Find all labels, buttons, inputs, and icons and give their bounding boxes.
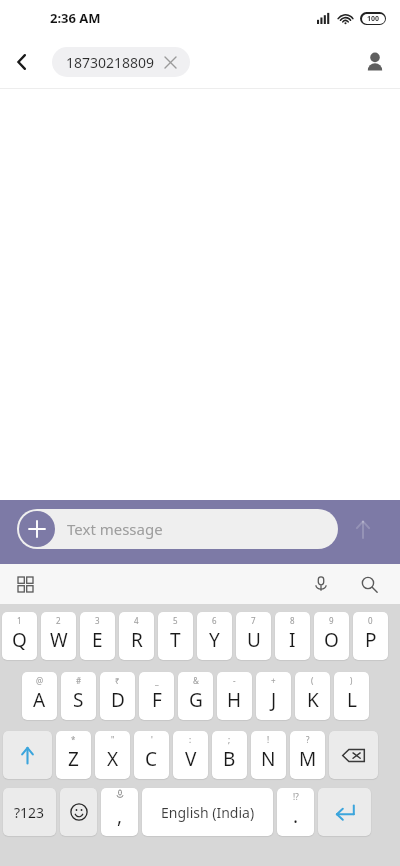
- staticText: English (India): [161, 803, 255, 822]
- staticText: C: [145, 746, 158, 772]
- button[interactable]: ?123: [3, 788, 56, 836]
- staticText: 4: [134, 615, 139, 626]
- button[interactable]: 3: [80, 612, 115, 660]
- button[interactable]: (: [295, 672, 330, 720]
- staticText: 9: [329, 615, 334, 626]
- button[interactable]: Back: [0, 40, 44, 84]
- staticText: G: [189, 687, 203, 713]
- button[interactable]: 6: [197, 612, 232, 660]
- staticText: V: [185, 746, 197, 772]
- button[interactable]: Send: [347, 513, 379, 545]
- button[interactable]: 7: [236, 612, 271, 660]
- button[interactable]: :: [173, 731, 208, 779]
- button[interactable]: Search: [352, 567, 386, 601]
- button[interactable]: 0: [353, 612, 388, 660]
- staticText: @: [36, 675, 44, 686]
- staticText: O: [324, 627, 339, 653]
- staticText: K: [307, 687, 319, 713]
- staticText: -: [233, 675, 236, 686]
- button[interactable]: 9: [314, 612, 349, 660]
- button[interactable]: ;: [212, 731, 247, 779]
- staticText: B: [223, 746, 236, 772]
- button[interactable]: Enter: [318, 788, 371, 836]
- staticText: Text message: [67, 519, 163, 539]
- staticText: L: [347, 687, 357, 713]
- button[interactable]: ): [334, 672, 369, 720]
- button[interactable]: ?: [290, 731, 325, 779]
- staticText: ': [151, 734, 153, 745]
- staticText: ;: [228, 734, 231, 745]
- staticText: A: [33, 687, 46, 713]
- staticText: *: [71, 734, 76, 745]
- staticText: ): [350, 675, 353, 686]
- staticText: J: [271, 687, 277, 713]
- button[interactable]: !?: [277, 788, 314, 836]
- staticText: W: [50, 627, 68, 653]
- staticText: U: [247, 627, 261, 653]
- button[interactable]: Emoji: [60, 788, 97, 836]
- button[interactable]: 1: [2, 612, 37, 660]
- button[interactable]: &: [178, 672, 213, 720]
- button[interactable]: @: [22, 672, 57, 720]
- button[interactable]: _: [139, 672, 174, 720]
- staticText: #: [76, 675, 82, 686]
- staticText: 5: [173, 615, 178, 626]
- button[interactable]: +: [256, 672, 291, 720]
- button[interactable]: -: [217, 672, 252, 720]
- staticText: I: [289, 627, 296, 653]
- staticText: !: [267, 734, 270, 745]
- button[interactable]: Keyboard toolbar: [8, 567, 42, 601]
- staticText: ": [111, 734, 115, 745]
- button[interactable]: 5: [158, 612, 193, 660]
- staticText: S: [73, 687, 84, 713]
- button[interactable]: 8: [275, 612, 310, 660]
- staticText: D: [111, 687, 125, 713]
- staticText: ?: [306, 734, 310, 745]
- button[interactable]: 2: [41, 612, 76, 660]
- staticText: 18730218809: [66, 53, 155, 72]
- staticText: :: [189, 734, 192, 745]
- staticText: 2: [56, 615, 61, 626]
- staticText: &: [193, 675, 199, 686]
- button[interactable]: Add attachment: [19, 511, 55, 547]
- staticText: ?123: [14, 803, 45, 822]
- staticText: !?: [293, 791, 299, 802]
- button[interactable]: Comma: [101, 788, 138, 836]
- staticText: 7: [251, 615, 256, 626]
- staticText: Q: [12, 627, 27, 653]
- staticText: 8: [290, 615, 295, 626]
- staticText: H: [227, 687, 242, 713]
- staticText: 1: [17, 615, 22, 626]
- staticText: F: [152, 687, 162, 713]
- staticText: M: [299, 746, 317, 772]
- button[interactable]: 18730218809: [52, 47, 190, 77]
- button[interactable]: Voice input: [304, 567, 338, 601]
- button[interactable]: Contact details: [350, 37, 400, 87]
- staticText: +: [271, 675, 276, 686]
- staticText: P: [365, 627, 377, 653]
- staticText: T: [170, 627, 181, 653]
- button[interactable]: Shift: [3, 731, 52, 779]
- button[interactable]: ': [134, 731, 169, 779]
- staticText: _: [155, 675, 159, 686]
- button[interactable]: Add attachment: [17, 509, 338, 549]
- button[interactable]: ": [95, 731, 130, 779]
- staticText: N: [261, 746, 276, 772]
- staticText: (: [311, 675, 314, 686]
- button[interactable]: Backspace: [329, 731, 378, 779]
- staticText: E: [92, 627, 103, 653]
- staticText: X: [107, 746, 119, 772]
- staticText: 100: [367, 14, 380, 24]
- button[interactable]: *: [56, 731, 91, 779]
- staticText: 6: [212, 615, 217, 626]
- button[interactable]: #: [61, 672, 96, 720]
- staticText: ₹: [115, 675, 120, 686]
- staticText: R: [131, 627, 143, 653]
- button[interactable]: 4: [119, 612, 154, 660]
- button[interactable]: ₹: [100, 672, 135, 720]
- button[interactable]: !: [251, 731, 286, 779]
- staticText: 0: [368, 615, 373, 626]
- staticText: Z: [68, 746, 79, 772]
- button[interactable]: English (India): [142, 788, 273, 836]
- staticText: .: [293, 803, 299, 829]
